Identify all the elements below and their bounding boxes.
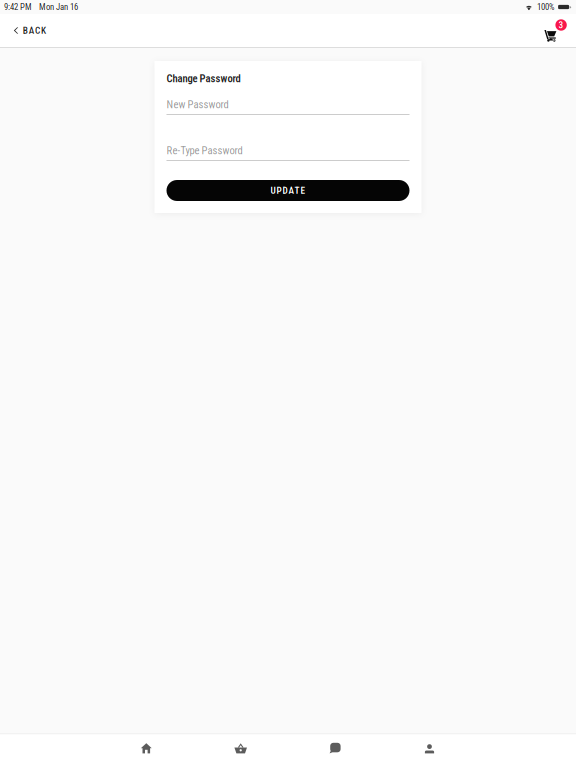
staticText: BACK [23,25,46,36]
staticText: UPDATE [270,185,305,196]
button[interactable]: BACK [0,14,65,47]
staticText: Change Password [166,72,240,85]
button[interactable]: Home [99,734,193,753]
staticText: Re-Type Password [166,144,242,157]
staticText: New Password [166,98,228,111]
button[interactable]: Messages [288,734,382,753]
staticText: 100% [537,2,554,12]
button[interactable]: Account [382,734,477,753]
staticText: Mon Jan 16 [39,2,78,12]
button[interactable]: Cart, 3 items [530,14,576,47]
staticText: 9:42 PM [4,2,32,12]
button[interactable]: UPDATE [166,180,409,201]
button[interactable]: Shop [193,734,288,753]
staticText: 3 [559,19,564,30]
